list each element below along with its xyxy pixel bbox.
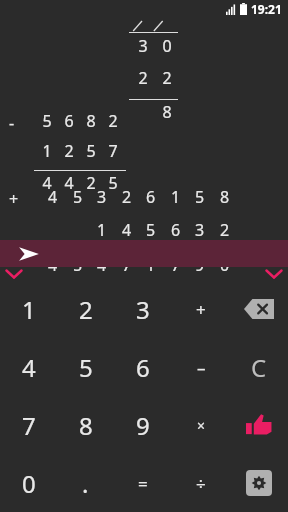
staticText: 3: [131, 35, 155, 57]
staticText: ×: [197, 416, 206, 435]
staticText: -: [9, 112, 15, 134]
staticText: +: [9, 188, 19, 210]
button[interactable]: 2: [57, 280, 114, 338]
staticText: =: [138, 472, 148, 495]
button[interactable]: =: [114, 454, 172, 512]
staticText: 7: [114, 254, 139, 276]
staticText: 8: [79, 409, 93, 442]
staticText: 8: [80, 110, 102, 132]
staticText: 2: [102, 110, 124, 132]
staticText: 2: [131, 67, 155, 89]
staticText: 0: [155, 35, 179, 57]
staticText: 5: [79, 351, 93, 384]
button[interactable]: +: [172, 280, 230, 338]
staticText: 3: [187, 219, 212, 241]
button[interactable]: 3: [114, 280, 172, 338]
button[interactable]: ÷: [172, 454, 230, 512]
staticText: 4: [40, 186, 65, 208]
button[interactable]: ×: [172, 396, 230, 454]
staticText: 1: [89, 219, 114, 241]
staticText: 1: [163, 186, 188, 208]
staticText: 6: [163, 219, 188, 241]
button[interactable]: C: [230, 338, 288, 396]
staticText: 2: [79, 293, 93, 326]
staticText: 3: [136, 293, 150, 326]
button[interactable]: 1: [0, 280, 57, 338]
staticText: 2: [212, 219, 237, 241]
staticText: 4: [58, 172, 80, 194]
staticText: 6: [58, 110, 80, 132]
button[interactable]: 4: [0, 338, 57, 396]
staticText: 4: [40, 254, 65, 276]
staticText: 6: [138, 186, 163, 208]
staticText: 4: [89, 254, 114, 276]
button[interactable]: .: [57, 454, 114, 512]
button[interactable]: 9: [114, 396, 172, 454]
staticText: 0: [212, 254, 237, 276]
staticText: 4: [22, 351, 36, 384]
staticText: –: [197, 356, 206, 379]
button[interactable]: Backspace: [230, 280, 288, 338]
button[interactable]: 0: [0, 454, 57, 512]
staticText: 4: [114, 219, 139, 241]
staticText: 2: [80, 172, 102, 194]
staticText: 5: [187, 186, 212, 208]
button[interactable]: 5: [57, 338, 114, 396]
staticText: 5: [36, 110, 58, 132]
button[interactable]: Settings: [230, 454, 288, 512]
button[interactable]: 6: [114, 338, 172, 396]
button[interactable]: 8: [57, 396, 114, 454]
staticText: 7: [163, 254, 188, 276]
staticText: 19:21: [251, 1, 282, 17]
staticText: 5: [65, 254, 90, 276]
staticText: 7: [102, 140, 124, 162]
staticText: 8: [212, 186, 237, 208]
staticText: 0: [22, 467, 36, 500]
button[interactable]: Approve: [230, 396, 288, 454]
staticText: 8: [155, 101, 179, 123]
staticText: C: [251, 351, 267, 384]
staticText: 2: [155, 67, 179, 89]
button[interactable]: Current input: [0, 240, 288, 267]
staticText: 1: [22, 293, 36, 326]
button[interactable]: 7: [0, 396, 57, 454]
staticText: 5: [102, 172, 124, 194]
staticText: 7: [22, 409, 36, 442]
staticText: 9: [187, 254, 212, 276]
staticText: 3: [89, 186, 114, 208]
staticText: 5: [138, 219, 163, 241]
staticText: 1: [36, 140, 58, 162]
staticText: 5: [65, 186, 90, 208]
staticText: 2: [114, 186, 139, 208]
button[interactable]: –: [172, 338, 230, 396]
staticText: 1: [138, 254, 163, 276]
staticText: 4: [36, 172, 58, 194]
staticText: .: [82, 467, 89, 500]
staticText: 6: [136, 351, 150, 384]
staticText: 9: [136, 409, 150, 442]
staticText: 2: [58, 140, 80, 162]
staticText: ÷: [196, 472, 206, 495]
staticText: 5: [80, 140, 102, 162]
staticText: +: [196, 298, 206, 321]
